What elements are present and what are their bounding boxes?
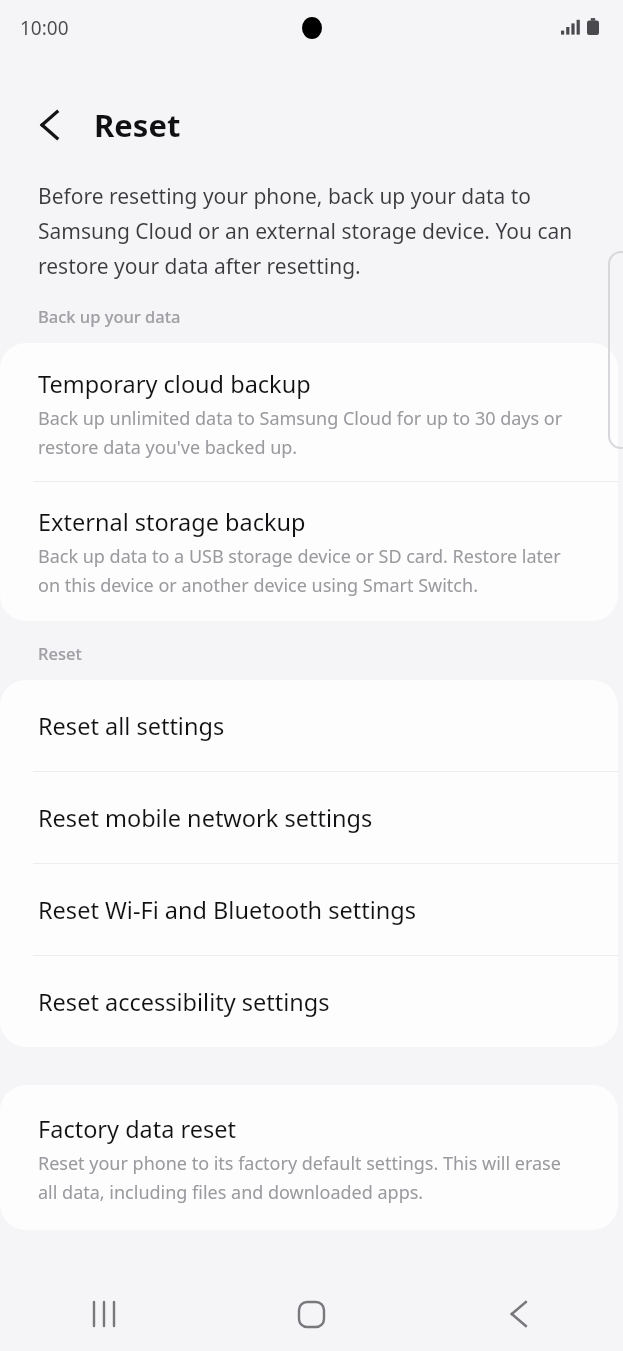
button[interactable]: Temporary cloud backup (0, 343, 618, 481)
staticText: Back up data to a USB storage device or … (38, 544, 584, 597)
staticText: Back up your data (38, 305, 181, 327)
button[interactable]: Back (415, 1277, 623, 1351)
staticText: Reset all settings (38, 710, 225, 742)
staticText: Reset Wi-Fi and Bluetooth settings (38, 894, 417, 926)
button[interactable]: Recent apps (0, 1277, 207, 1351)
staticText: Reset (38, 642, 82, 664)
staticText: Before resetting your phone, back up you… (38, 182, 583, 281)
button[interactable]: Back (24, 99, 76, 151)
button[interactable]: Reset all settings (0, 680, 618, 771)
staticText: Reset your phone to its factory default … (38, 1151, 584, 1204)
staticText: Reset mobile network settings (38, 802, 373, 834)
staticText: Reset (94, 104, 181, 146)
button[interactable]: Factory data reset (0, 1085, 618, 1230)
button[interactable]: External storage backup (0, 482, 618, 621)
staticText: Factory data reset (38, 1113, 237, 1145)
staticText: Temporary cloud backup (38, 368, 311, 400)
button[interactable]: Home (207, 1277, 415, 1351)
button[interactable]: Reset Wi-Fi and Bluetooth settings (0, 864, 618, 955)
staticText: External storage backup (38, 506, 306, 538)
staticText: Reset accessibility settings (38, 986, 330, 1018)
button[interactable]: Reset mobile network settings (0, 772, 618, 863)
staticText: Back up unlimited data to Samsung Cloud … (38, 406, 584, 459)
staticText: 10:00 (20, 15, 69, 41)
button[interactable]: Reset accessibility settings (0, 956, 618, 1047)
